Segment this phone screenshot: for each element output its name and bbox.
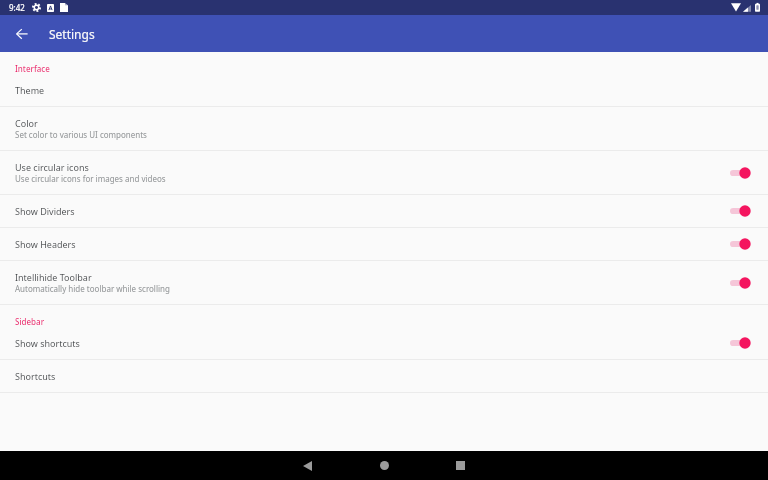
button[interactable]: Toggle — [722, 200, 752, 222]
staticText: 9:42 — [9, 2, 25, 13]
button[interactable]: Theme — [0, 74, 768, 106]
button[interactable]: Toggle — [722, 162, 752, 184]
button[interactable]: Back — [0, 15, 42, 52]
staticText: Intellihide Toolbar — [15, 271, 92, 283]
staticText: Show shortcuts — [15, 337, 80, 349]
button[interactable]: Intellihide Toolbar — [0, 261, 768, 304]
button[interactable]: Use circular icons — [0, 151, 768, 194]
staticText: Show Dividers — [15, 205, 75, 217]
staticText: Theme — [15, 84, 45, 96]
button[interactable]: Show Dividers — [0, 195, 768, 227]
staticText: Interface — [15, 63, 50, 74]
staticText: Set color to various UI components — [15, 129, 147, 140]
button[interactable]: Show shortcuts — [0, 327, 768, 359]
button[interactable]: Toggle — [722, 233, 752, 255]
button[interactable]: Toggle — [722, 272, 752, 294]
staticText: Shortcuts — [15, 370, 56, 382]
button[interactable]: Color — [0, 107, 768, 150]
staticText: Sidebar — [15, 316, 45, 327]
staticText: Show Headers — [15, 238, 76, 250]
button[interactable]: Show Headers — [0, 228, 768, 260]
button[interactable]: Recents — [440, 451, 480, 480]
staticText: Color — [15, 117, 38, 129]
staticText: Use circular icons — [15, 161, 89, 173]
staticText: Settings — [49, 26, 95, 42]
button[interactable]: Shortcuts — [0, 360, 768, 392]
staticText: Use circular icons for images and videos — [15, 173, 166, 184]
button[interactable]: Back — [287, 451, 327, 480]
button[interactable]: Toggle — [722, 332, 752, 354]
button[interactable]: Home — [364, 451, 404, 480]
staticText: Automatically hide toolbar while scrolli… — [15, 283, 170, 294]
